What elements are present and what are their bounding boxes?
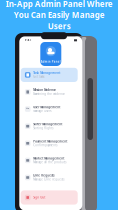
staticText: In-App Admin Panel Where [5,0,112,9]
staticText: E-File Requests [33,174,54,177]
staticText: Users [47,21,70,31]
button[interactable]: E-File Requests [21,170,78,185]
button[interactable]: User Management [21,102,78,116]
button[interactable]: Sorter Management [21,119,78,133]
staticText: Sorter Management [33,122,62,126]
button[interactable]: Payment Management [21,136,78,150]
staticText: Admin Panel [41,60,61,63]
staticText: Sign Out [33,196,45,199]
staticText: 9:41 [25,38,32,42]
button[interactable]: Market Management [21,153,78,167]
button[interactable]: Mission Evidence [21,85,78,99]
staticText: Market Management [33,157,64,160]
staticText: Manage all the products [33,161,66,164]
staticText: Sorting flights [33,126,53,130]
staticText: User Management [33,105,60,109]
staticText: Confirm payments [33,143,57,147]
staticText: Payment Management [33,140,67,143]
staticText: ▮▮▮ [74,38,77,41]
button[interactable]: Sign Out [21,190,78,205]
staticText: Get tasks [33,75,44,78]
staticText: Task Management [33,71,60,75]
staticText: Mission Evidence [33,88,56,92]
staticText: Manage users [33,109,51,113]
staticText: Manage E-File requests [33,178,64,181]
staticText: Examining the evidence [33,92,65,96]
staticText: You Can Easily Manage [13,10,104,20]
button[interactable]: Task Management [21,68,78,82]
